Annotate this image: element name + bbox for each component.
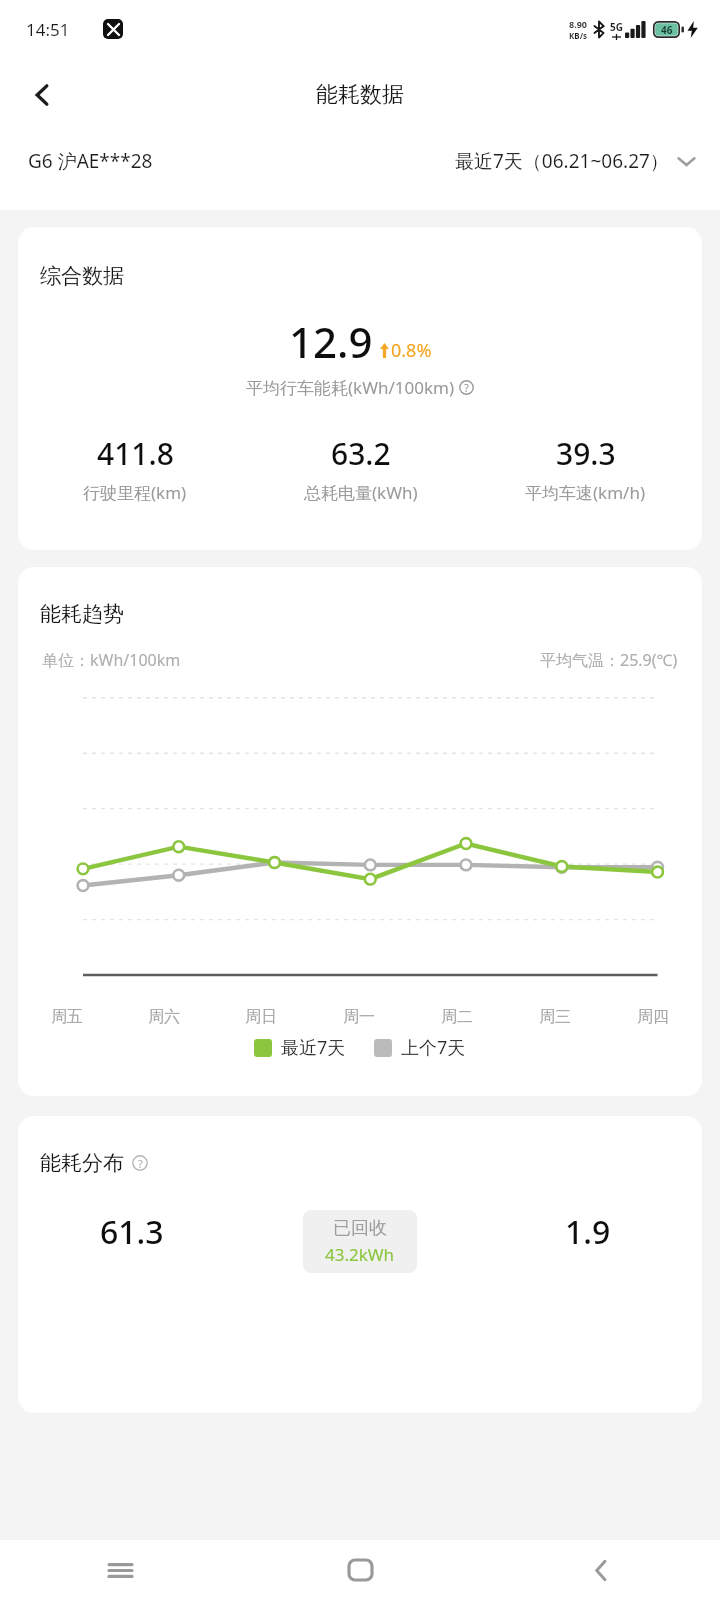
button[interactable]: Recent apps bbox=[0, 1540, 240, 1600]
staticText: ? bbox=[464, 381, 469, 395]
staticText: 周日 bbox=[245, 1007, 277, 1027]
button[interactable]: Back bbox=[480, 1540, 720, 1600]
staticText: 63.2 bbox=[331, 433, 391, 474]
staticText: 61.3 bbox=[100, 1210, 164, 1254]
staticText: 最近7天 bbox=[281, 1035, 346, 1060]
staticText: 行驶里程(km) bbox=[83, 481, 187, 504]
staticText: 43.2kWh bbox=[325, 1243, 395, 1266]
staticText: 已回收 bbox=[333, 1217, 387, 1240]
staticText: KB/s bbox=[569, 30, 587, 41]
staticText: 平均行车能耗(kWh/100km) bbox=[246, 376, 455, 399]
button[interactable]: Back bbox=[16, 69, 68, 121]
staticText: G6 沪AE***28 bbox=[28, 148, 153, 174]
staticText: 5G bbox=[610, 20, 623, 34]
staticText: 周六 bbox=[148, 1007, 180, 1027]
button[interactable]: 最近7天 bbox=[254, 1035, 346, 1060]
button[interactable]: 39.3 bbox=[473, 433, 698, 504]
staticText: 综合数据 bbox=[40, 263, 124, 289]
staticText: 能耗数据 bbox=[316, 81, 404, 109]
staticText: 上个7天 bbox=[401, 1035, 466, 1060]
staticText: 能耗分布 bbox=[40, 1150, 124, 1176]
staticText: 12.9 bbox=[289, 313, 373, 370]
button[interactable]: 综合数据 bbox=[18, 227, 702, 550]
staticText: 1.9 bbox=[565, 1210, 611, 1254]
staticText: 周五 bbox=[51, 1007, 83, 1027]
staticText: 最近7天（06.21~06.27） bbox=[455, 148, 669, 174]
staticText: 单位：kWh/100km bbox=[42, 649, 181, 671]
staticText: 总耗电量(kWh) bbox=[304, 481, 418, 504]
button[interactable]: 上个7天 bbox=[374, 1035, 466, 1060]
staticText: 周一 bbox=[343, 1007, 375, 1027]
staticText: 周二 bbox=[441, 1007, 473, 1027]
staticText: ? bbox=[138, 1156, 143, 1171]
staticText: 0.8% bbox=[391, 338, 432, 363]
button[interactable]: Home bbox=[240, 1540, 480, 1600]
staticText: 能耗趋势 bbox=[40, 601, 124, 627]
button[interactable]: 63.2 bbox=[248, 433, 473, 504]
button[interactable]: 能耗分布 bbox=[18, 1116, 702, 1413]
staticText: 8.90 bbox=[569, 18, 587, 30]
staticText: 周四 bbox=[637, 1007, 669, 1027]
staticText: 周三 bbox=[539, 1007, 571, 1027]
staticText: 14:51 bbox=[26, 18, 70, 41]
button[interactable]: 能耗趋势 bbox=[18, 567, 702, 1096]
staticText: 46 bbox=[661, 23, 673, 37]
staticText: 平均气温：25.9(℃) bbox=[540, 649, 678, 671]
button[interactable]: 最近7天（06.21~06.27） bbox=[455, 148, 720, 174]
staticText: 411.8 bbox=[97, 433, 174, 474]
staticText: 平均车速(km/h) bbox=[525, 481, 646, 504]
staticText: 39.3 bbox=[556, 433, 616, 474]
button[interactable]: 411.8 bbox=[22, 433, 248, 504]
